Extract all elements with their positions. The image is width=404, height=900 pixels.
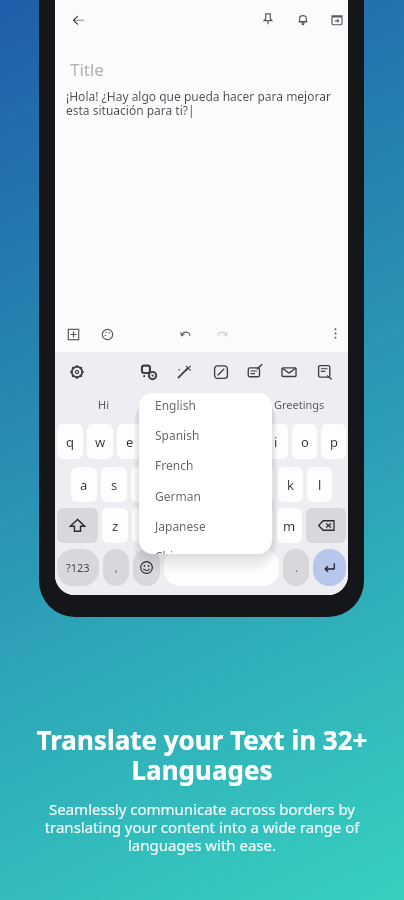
staticText: w [95,433,106,451]
button[interactable]: Space [164,549,279,586]
button[interactable]: Palette [101,328,114,341]
button[interactable]: w [87,424,113,459]
staticText: French [155,457,194,473]
staticText: p [330,433,338,451]
staticText: m [283,517,296,535]
staticText: Chinese [155,548,200,554]
staticText: i [274,433,278,451]
button[interactable]: Magic compose [176,364,192,380]
button[interactable]: Greetings [250,395,348,413]
staticText: Japanese [155,518,206,534]
button[interactable]: a [71,467,97,502]
staticText: q [66,433,74,451]
button[interactable]: Japanese [139,511,272,541]
staticText: Spanish [155,427,200,443]
button[interactable]: n [248,508,273,543]
button[interactable]: k [278,467,303,502]
staticText: l [318,476,322,494]
button[interactable]: English [139,393,272,420]
button[interactable]: s [101,467,127,502]
staticText: o [301,433,309,451]
button[interactable]: o [292,424,317,459]
staticText: ¡Hola! ¿Hay algo que pueda hacer para me… [66,88,336,119]
button[interactable]: Redo [216,328,229,341]
button[interactable]: Translate [247,364,263,380]
staticText: z [112,517,119,535]
button[interactable]: . [283,549,309,586]
staticText: Hello [188,397,215,412]
staticText: e [126,433,134,451]
button[interactable]: Hello [152,395,250,413]
staticText: Title [70,58,104,81]
button[interactable]: German [139,481,272,511]
staticText: r [157,433,163,451]
staticText: , [115,561,118,575]
staticText: Greetings [274,397,325,412]
button[interactable]: Emoji [133,549,160,586]
button[interactable]: q [57,424,83,459]
staticText: Translate your Text in 32+ Languages [20,722,384,788]
staticText: k [287,476,294,494]
button[interactable]: p [321,424,346,459]
staticText: s [111,476,118,494]
button[interactable]: Shift [57,508,98,543]
button[interactable]: c [161,508,186,543]
button[interactable]: ?123 [57,549,99,586]
button[interactable]: i [263,424,288,459]
button[interactable]: Lens [141,364,157,380]
button[interactable]: v [190,508,215,543]
button[interactable]: x [132,508,157,543]
button[interactable]: Edit [213,364,229,380]
staticText: c [170,517,177,535]
button[interactable]: z [102,508,128,543]
button[interactable]: d [131,467,157,502]
button[interactable]: Keyboard settings [69,364,85,380]
button[interactable]: Pin [261,12,275,26]
button[interactable]: l [307,467,332,502]
button[interactable]: m [277,508,302,543]
button[interactable]: j [249,467,274,502]
button[interactable]: Spanish [139,420,272,450]
staticText: v [199,517,206,535]
button[interactable]: Clipboard [317,364,333,380]
button[interactable]: Mail [281,364,297,380]
staticText: Seamlessly communicate across borders by… [42,799,362,856]
button[interactable]: g [191,467,216,502]
button[interactable]: Undo [179,328,192,341]
staticText: t [186,433,191,451]
button[interactable]: r [147,424,172,459]
button[interactable]: Hi [55,395,152,413]
button[interactable]: t [176,424,201,459]
button[interactable]: Reminder [296,12,310,26]
button[interactable]: Archive [330,13,344,27]
staticText: . [295,561,298,575]
button[interactable]: f [161,467,187,502]
button[interactable]: e [117,424,143,459]
button[interactable]: Enter [313,549,346,586]
button[interactable]: Backspace [306,508,346,543]
button[interactable]: More options [329,327,342,340]
staticText: English [155,397,196,413]
staticText: German [155,488,201,504]
staticText: a [80,476,88,494]
button[interactable]: , [103,549,129,586]
button[interactable]: Back [71,13,85,27]
button[interactable]: Chinese [139,541,272,554]
staticText: ?123 [66,560,90,575]
button[interactable]: Add [67,328,80,341]
button[interactable]: French [139,450,272,480]
